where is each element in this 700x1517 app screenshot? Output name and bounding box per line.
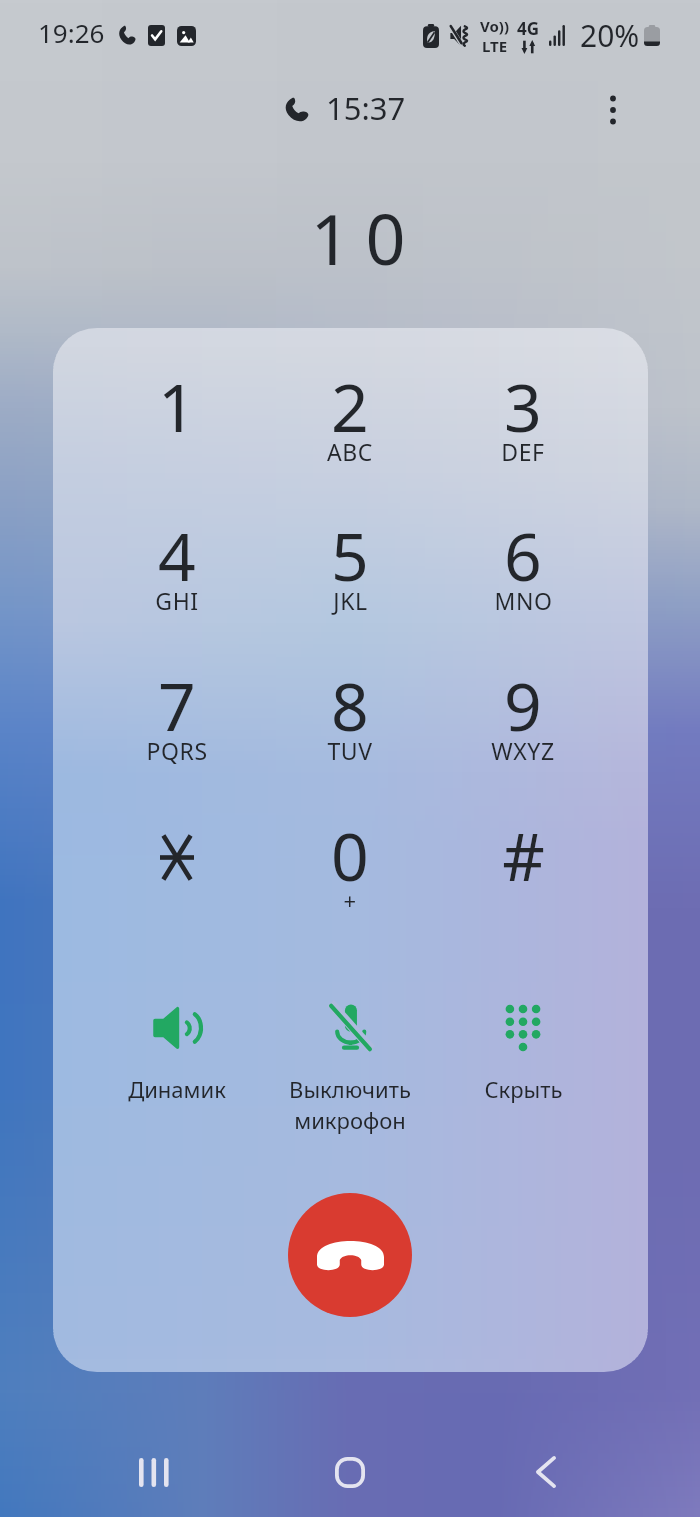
button[interactable]: #	[437, 785, 609, 929]
button[interactable]: 7	[91, 635, 263, 779]
button[interactable]: 2	[264, 336, 436, 480]
staticText: PQRS	[146, 735, 208, 766]
staticText: DEF	[501, 436, 545, 467]
button[interactable]: 5	[264, 485, 436, 629]
staticText: 8	[331, 660, 369, 750]
staticText: GHI	[155, 585, 199, 616]
staticText: TUV	[327, 735, 373, 766]
staticText: 9	[504, 660, 542, 750]
button[interactable]: More options	[588, 85, 637, 134]
button[interactable]: Динамик	[82, 986, 272, 1136]
button[interactable]: End call	[288, 1193, 412, 1317]
staticText: #	[502, 810, 545, 900]
staticText: 15:37	[326, 87, 406, 129]
staticText: 1	[158, 361, 196, 451]
button[interactable]: Скрыть	[428, 986, 618, 1136]
staticText: ABC	[327, 436, 373, 467]
staticText: 0	[331, 810, 369, 900]
staticText: WXYZ	[491, 735, 555, 766]
button[interactable]: 8	[264, 635, 436, 779]
staticText: 6	[504, 510, 542, 600]
staticText: 10	[310, 190, 421, 285]
staticText: 2	[331, 361, 369, 451]
staticText: 4	[158, 510, 196, 600]
button[interactable]: Выключить микрофон	[255, 986, 445, 1136]
button[interactable]: Back	[491, 1432, 601, 1512]
button[interactable]: 6	[437, 485, 609, 629]
button[interactable]: 9	[437, 635, 609, 779]
staticText: +	[343, 885, 357, 915]
button[interactable]: 1	[91, 336, 263, 480]
staticText: MNO	[494, 585, 553, 616]
staticText: 20%	[580, 15, 640, 56]
staticText: Выключить микрофон	[289, 1074, 411, 1136]
staticText: 5	[331, 510, 369, 600]
staticText: Vo))	[480, 16, 509, 36]
button[interactable]: 4	[91, 485, 263, 629]
staticText: JKL	[333, 585, 368, 616]
button[interactable]: 0	[264, 785, 436, 929]
staticText: 3	[504, 361, 542, 451]
staticText: Динамик	[128, 1074, 226, 1104]
staticText: 7	[158, 660, 196, 750]
button[interactable]: Recents	[98, 1432, 208, 1512]
button[interactable]: 3	[437, 336, 609, 480]
button[interactable]: Home	[295, 1432, 405, 1512]
staticText: Скрыть	[484, 1074, 563, 1104]
button[interactable]	[91, 785, 263, 929]
staticText: 4G	[517, 17, 540, 40]
staticText: LTE	[482, 36, 508, 56]
staticText: 19:26	[38, 15, 105, 50]
